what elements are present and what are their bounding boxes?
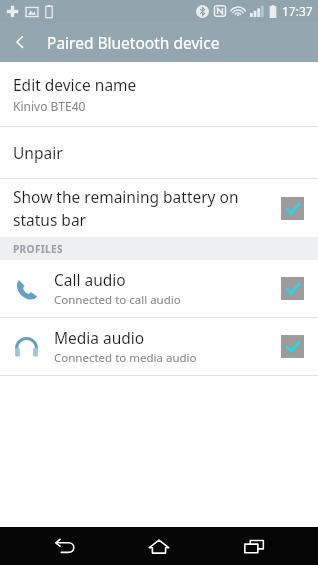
button[interactable]: Toggle [281, 197, 304, 220]
staticText: Media audio [54, 327, 145, 348]
button[interactable]: Toggle [281, 335, 304, 358]
button[interactable]: Unpair [0, 127, 318, 178]
staticText: status bar [13, 209, 86, 230]
button[interactable]: Media audio [0, 318, 318, 375]
staticText: Kinivo BTE40 [13, 98, 86, 114]
button[interactable]: Back [35, 527, 95, 565]
staticText: Paired Bluetooth device [47, 32, 220, 53]
staticText: PROFILES [13, 242, 63, 256]
staticText: Connected to media audio [54, 350, 197, 366]
button[interactable]: Home [129, 527, 189, 565]
button[interactable]: Call audio [0, 260, 318, 317]
button[interactable]: Toggle [281, 277, 304, 300]
staticText: Edit device name [13, 74, 137, 95]
button[interactable]: Edit device name [0, 62, 318, 126]
staticText: Call audio [54, 269, 126, 290]
staticText: Connected to call audio [54, 292, 181, 308]
button[interactable]: Back [0, 22, 40, 62]
staticText: Unpair [13, 142, 63, 163]
staticText: Show the remaining battery on [13, 186, 239, 207]
staticText: 17:37 [282, 3, 313, 19]
button[interactable]: Show the remaining battery on [0, 179, 318, 237]
button[interactable]: Recent apps [224, 527, 284, 565]
